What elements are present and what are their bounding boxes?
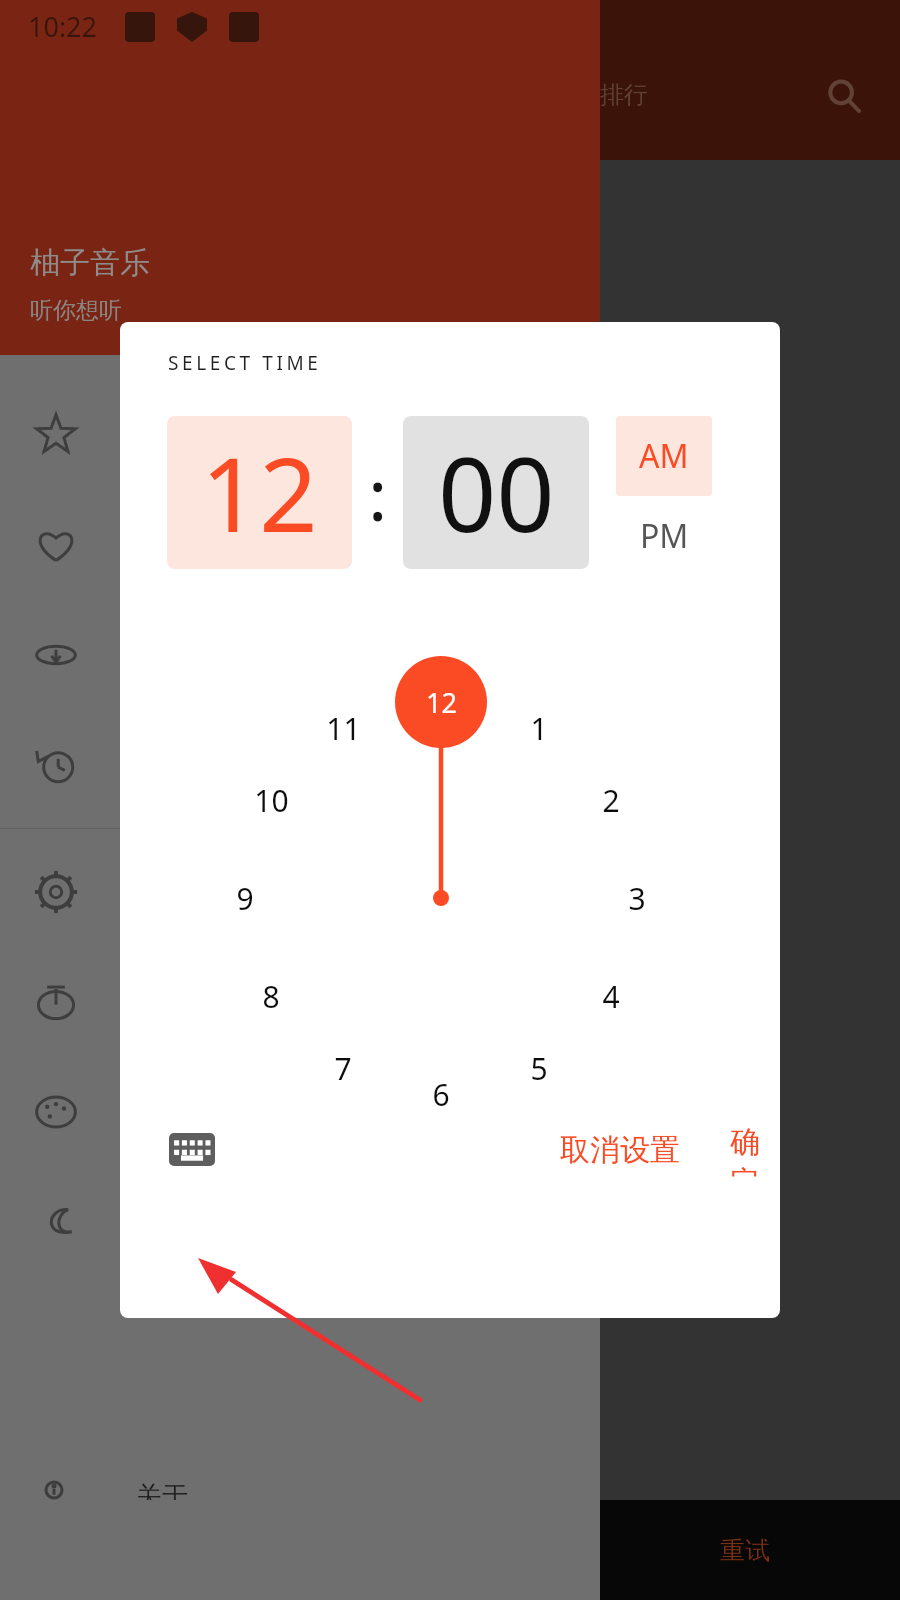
button[interactable]: Menu item	[0, 947, 600, 1057]
button[interactable]: Search	[818, 70, 870, 122]
staticText: 9	[236, 878, 254, 919]
button[interactable]: 4	[581, 970, 641, 1022]
button[interactable]: 3	[607, 872, 667, 924]
staticText: 12	[426, 684, 457, 721]
button[interactable]: Menu item	[0, 380, 600, 490]
staticText: 10	[254, 780, 289, 821]
staticText: 1	[530, 708, 548, 749]
staticText: 排行	[600, 80, 648, 110]
staticText: 00	[438, 423, 555, 562]
button[interactable]: 12	[167, 416, 352, 569]
staticText: 10:22	[28, 8, 98, 45]
staticText: 确定	[730, 1123, 780, 1177]
staticText: 3	[628, 878, 646, 919]
button[interactable]: 11	[313, 702, 373, 754]
staticText: 听你想听	[30, 296, 122, 325]
button[interactable]: PM	[616, 496, 712, 576]
button[interactable]: 6	[411, 1068, 471, 1120]
staticText: :	[368, 444, 388, 542]
button[interactable]: 10	[241, 774, 301, 826]
staticText: 取消设置	[560, 1131, 680, 1169]
staticText: AM	[639, 434, 689, 478]
staticText: 11	[326, 708, 361, 749]
staticText: 历史	[165, 340, 209, 368]
button[interactable]: Menu item	[0, 490, 600, 600]
staticText: SELECT TIME	[168, 350, 322, 376]
button[interactable]: 12	[411, 676, 471, 728]
button[interactable]: 7	[313, 1042, 373, 1094]
other: Menu item	[30, 866, 82, 918]
button[interactable]: 5	[509, 1042, 569, 1094]
button[interactable]: AM	[616, 416, 712, 496]
other: Menu item	[30, 409, 82, 461]
button[interactable]: Switch to text input	[164, 1127, 220, 1171]
staticText: 重试	[720, 1535, 770, 1566]
button[interactable]: 8	[241, 970, 301, 1022]
staticText: PM	[640, 514, 689, 558]
button[interactable]: 取消设置	[560, 1123, 680, 1177]
other: Menu item	[30, 1086, 82, 1138]
other: Menu item	[30, 976, 82, 1028]
button[interactable]: Menu item	[0, 710, 600, 820]
other: Menu item	[30, 629, 82, 681]
button[interactable]: Menu item	[0, 600, 600, 710]
button[interactable]: Menu item	[0, 1057, 600, 1167]
staticText: 5	[530, 1048, 548, 1089]
staticText: 12	[201, 423, 318, 562]
button[interactable]: 关于	[0, 1480, 600, 1500]
button[interactable]: 00	[403, 416, 589, 569]
staticText: 2	[602, 780, 620, 821]
button[interactable]: 1	[509, 702, 569, 754]
staticText: 7	[334, 1048, 352, 1089]
button[interactable]: 9	[215, 872, 275, 924]
button[interactable]: Menu item	[0, 837, 600, 947]
other: Menu item	[30, 519, 82, 571]
staticText: 柚子音乐	[30, 244, 150, 282]
other: Menu item	[30, 1196, 82, 1248]
staticText: 关于	[136, 1480, 188, 1500]
button[interactable]: Menu item	[0, 1167, 600, 1277]
button[interactable]: 确定	[730, 1123, 780, 1177]
button[interactable]: 2	[581, 774, 641, 826]
staticText: 6	[432, 1074, 450, 1115]
staticText: 4	[602, 976, 620, 1017]
other: Menu item	[30, 739, 82, 791]
button[interactable]: 重试	[590, 1500, 900, 1600]
staticText: 8	[262, 976, 280, 1017]
